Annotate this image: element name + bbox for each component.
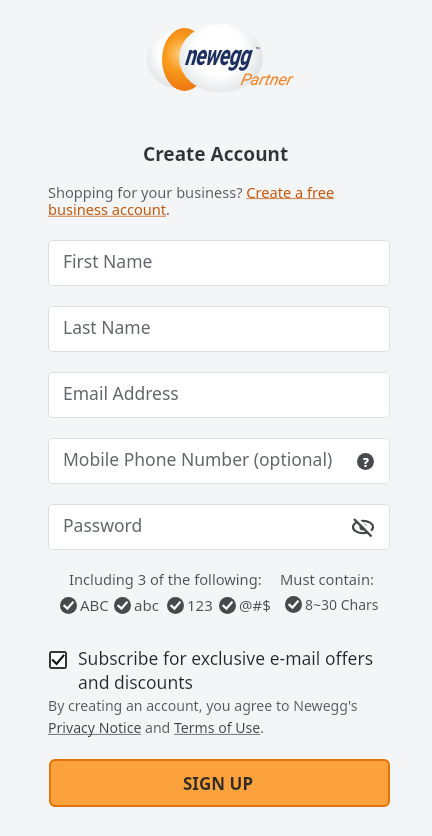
staticText: 8~30 Chars [305,595,379,614]
staticText: newegg [185,38,250,71]
staticText: By creating an account, you agree to New… [48,696,358,737]
staticText: First Name [63,249,153,273]
button[interactable]: Mobile Phone Number (optional) [48,438,390,484]
staticText: Last Name [63,315,151,339]
staticText: @#$ [239,595,271,615]
button[interactable]: SIGN UP [49,759,390,807]
staticText: Password [63,513,143,537]
staticText: Including 3 of the following: [69,569,262,589]
button[interactable]: By creating an account, you agree to New… [48,696,400,737]
staticText: Must contain: [280,569,374,589]
staticText: SIGN UP [183,772,253,795]
staticText: ABC [80,595,109,615]
staticText: Mobile Phone Number (optional) [63,447,333,471]
staticText: Subscribe for exclusive e-mail offers an… [78,646,374,694]
button[interactable]: Subscribe for exclusive e-mail offers an… [48,646,390,694]
staticText: Shopping for your business? Create a fre… [48,182,335,219]
button[interactable]: First Name [48,240,390,286]
button[interactable]: Password [48,504,390,550]
button[interactable]: Email Address [48,372,390,418]
staticText: abc [134,595,159,615]
staticText: Partner [240,70,291,89]
button[interactable]: ? [357,453,374,470]
staticText: Create Account [143,141,289,167]
staticText: Email Address [63,381,179,405]
button[interactable]: Shopping for your business? Create a fre… [48,182,392,219]
button[interactable] [352,516,374,538]
staticText: ? [363,454,369,470]
staticText: ™ [255,46,261,55]
button[interactable]: Last Name [48,306,390,352]
staticText: 123 [187,595,213,615]
